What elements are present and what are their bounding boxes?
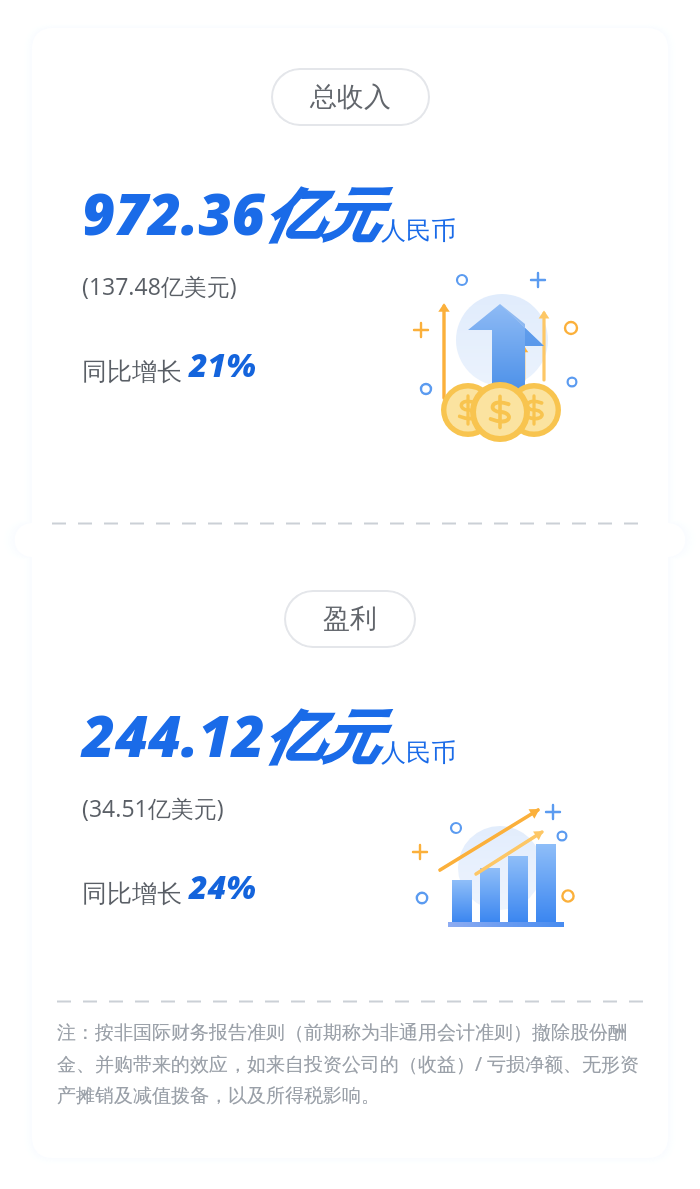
staticText: 人民币 <box>381 737 456 768</box>
staticText: 24% <box>189 865 256 909</box>
staticText: (34.51亿美元) <box>82 792 224 823</box>
staticText: (137.48亿美元) <box>82 270 237 301</box>
staticText: 盈利 <box>323 602 377 636</box>
staticText: 21% <box>189 343 256 387</box>
staticText: 总收入 <box>310 80 391 114</box>
staticText: 注：按非国际财务报告准则（前期称为非通用会计准则）撤除股份酬金、并购带来的效应，… <box>57 1021 643 1108</box>
staticText: 同比增长 <box>82 353 189 387</box>
staticText: 244.12亿元 <box>82 696 379 774</box>
button[interactable]: 盈利 <box>283 590 417 648</box>
staticText: 人民币 <box>381 215 456 246</box>
button[interactable]: 总收入 <box>270 68 431 126</box>
staticText: 同比增长 <box>82 875 189 909</box>
staticText: 972.36亿元 <box>82 174 379 252</box>
